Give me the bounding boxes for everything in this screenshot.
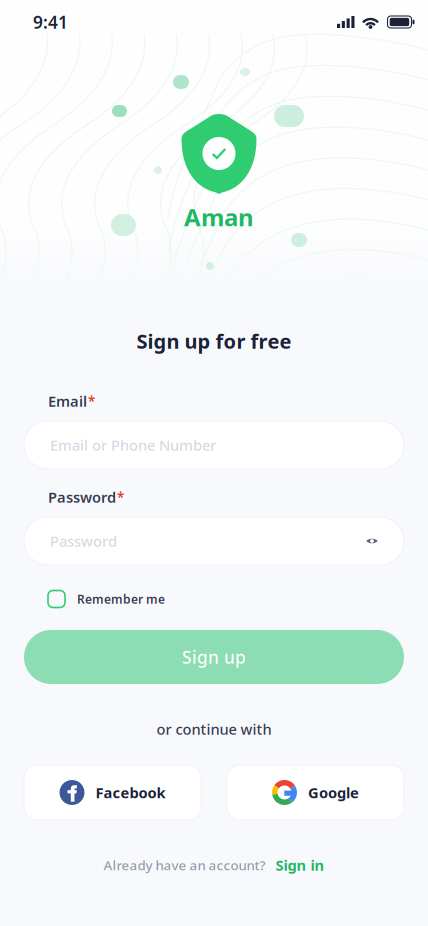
staticText: Sign up [182, 645, 246, 668]
staticText: Remember me [77, 591, 165, 607]
staticText: Aman [184, 201, 254, 233]
button[interactable]: Show password [360, 529, 384, 553]
staticText: Password [48, 487, 116, 507]
button[interactable]: Facebook [24, 765, 201, 820]
staticText: Sign up for free [136, 328, 291, 354]
staticText: Email or Phone Number [50, 435, 216, 455]
staticText: Facebook [95, 783, 165, 802]
staticText: or continue with [156, 719, 271, 739]
staticText: Password [50, 531, 117, 551]
button[interactable]: Sign in [275, 855, 324, 875]
staticText: * [117, 488, 124, 506]
staticText: Email [48, 391, 87, 411]
staticText: 9:41 [33, 10, 68, 33]
button[interactable]: Remember me [48, 588, 228, 610]
button[interactable]: Sign up [24, 630, 404, 684]
staticText: Already have an account? [103, 856, 265, 874]
staticText: Sign in [275, 855, 324, 875]
button[interactable]: Google [227, 765, 404, 820]
staticText: * [88, 392, 95, 410]
staticText: Google [308, 783, 359, 802]
